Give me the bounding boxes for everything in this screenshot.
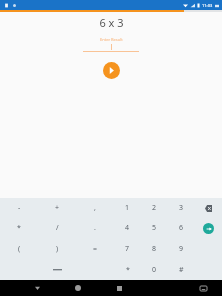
staticText: )	[56, 244, 59, 254]
button[interactable]: Recents	[111, 280, 127, 296]
button[interactable]: 1	[114, 198, 141, 218]
staticText: 6	[179, 223, 184, 233]
button[interactable]: )	[38, 238, 76, 259]
staticText: .	[94, 223, 96, 233]
staticText: -	[18, 203, 21, 213]
other: Backspace	[205, 205, 212, 212]
button[interactable]: 8	[141, 238, 168, 259]
other: Enter	[203, 223, 214, 234]
staticText: /	[56, 223, 59, 233]
staticText: 8	[152, 244, 157, 254]
staticText: 2	[152, 203, 157, 213]
button[interactable]: ,	[76, 198, 114, 218]
staticText: ,	[94, 203, 96, 213]
button[interactable]: Enter Result	[83, 37, 139, 52]
staticText: Enter Result	[100, 37, 123, 42]
staticText: 4	[125, 223, 130, 233]
button[interactable]: Keyboard	[195, 280, 211, 296]
button[interactable]: Enter	[195, 218, 222, 238]
button[interactable]: /	[38, 218, 76, 238]
staticText: =	[93, 244, 98, 254]
staticText: 3	[179, 203, 184, 213]
staticText: *	[126, 265, 130, 275]
button[interactable]: 6	[168, 218, 195, 238]
button[interactable]: 3	[168, 198, 195, 218]
staticText: *	[17, 223, 21, 233]
button[interactable]: +	[38, 198, 76, 218]
button[interactable]: -	[0, 198, 38, 218]
button[interactable]: 4	[114, 218, 141, 238]
button[interactable]: (	[0, 238, 38, 259]
button[interactable]: *	[114, 259, 141, 280]
button[interactable]: 9	[168, 238, 195, 259]
staticText: 1	[125, 203, 130, 213]
button[interactable]: Backspace	[195, 198, 222, 218]
button[interactable]: =	[76, 238, 114, 259]
button[interactable]: Play	[103, 62, 120, 79]
staticText: #	[179, 265, 184, 275]
button[interactable]	[38, 259, 76, 280]
button[interactable]: Home	[70, 280, 86, 296]
staticText: (	[18, 244, 21, 254]
button[interactable]: 5	[141, 218, 168, 238]
button[interactable]: 2	[141, 198, 168, 218]
staticText: 11:03	[202, 3, 213, 8]
staticText: 6 x 3	[99, 15, 124, 30]
staticText: 5	[152, 223, 157, 233]
staticText: 7	[125, 244, 130, 254]
button[interactable]: 7	[114, 238, 141, 259]
staticText: 9	[179, 244, 184, 254]
button[interactable]: #	[168, 259, 195, 280]
staticText: 0	[152, 265, 157, 275]
staticText: +	[55, 203, 60, 213]
button[interactable]: 0	[141, 259, 168, 280]
button[interactable]: *	[0, 218, 38, 238]
button[interactable]: Back	[29, 280, 45, 296]
